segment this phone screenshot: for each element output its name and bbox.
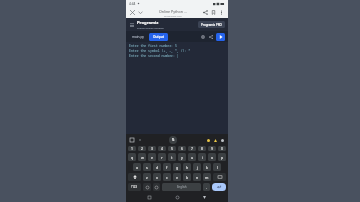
button[interactable]: z <box>143 173 151 181</box>
button[interactable]: Home <box>174 194 181 201</box>
button[interactable]: o <box>208 153 216 161</box>
staticText: 0 <box>221 146 223 151</box>
button[interactable]: Clipboard <box>129 137 135 143</box>
button[interactable]: p <box>218 153 226 161</box>
button[interactable]: h <box>183 163 191 171</box>
button[interactable]: Settings <box>199 33 206 40</box>
button[interactable]: Tab switcher <box>137 9 144 16</box>
button[interactable]: t <box>168 153 176 161</box>
staticText: English <box>177 185 187 189</box>
button[interactable]: w <box>138 153 146 161</box>
button[interactable]: g <box>173 163 181 171</box>
button[interactable]: u <box>188 153 196 161</box>
staticText: 9 <box>211 146 213 151</box>
button[interactable]: 7 <box>188 146 196 151</box>
button[interactable]: v <box>173 173 181 181</box>
button[interactable]: Shift <box>128 173 141 181</box>
staticText: Output <box>153 35 164 39</box>
button[interactable]: Emoji keyboard <box>143 183 151 191</box>
staticText: c <box>166 175 168 180</box>
button[interactable]: i <box>198 153 206 161</box>
button[interactable]: f <box>163 163 171 171</box>
staticText: u <box>191 155 194 160</box>
button[interactable]: 6 <box>178 146 186 151</box>
button[interactable]: Emoji <box>206 138 211 143</box>
staticText: Python Online Compiler <box>137 26 164 29</box>
staticText: m <box>205 175 209 180</box>
button[interactable]: main.py <box>129 33 147 41</box>
staticText: Online Python … <box>159 9 187 14</box>
button[interactable]: d <box>153 163 161 171</box>
staticText: ?123 <box>131 185 138 189</box>
button[interactable]: Settings <box>220 138 225 143</box>
button[interactable]: b <box>183 173 191 181</box>
staticText: i <box>202 155 203 160</box>
button[interactable]: Backspace <box>213 173 226 181</box>
button[interactable]: 3 <box>148 146 156 151</box>
button[interactable]: x <box>153 173 161 181</box>
staticText: 1 <box>131 146 133 151</box>
button[interactable]: c <box>163 173 171 181</box>
button[interactable]: Recent apps <box>146 194 153 201</box>
staticText: v <box>176 175 178 180</box>
button[interactable]: Bookmark <box>210 9 217 16</box>
button[interactable]: a <box>133 163 141 171</box>
button[interactable]: n <box>193 173 201 181</box>
button[interactable]: r <box>158 153 166 161</box>
staticText: k <box>206 165 208 170</box>
staticText: t <box>171 155 173 160</box>
button[interactable]: Programiz <box>137 20 164 29</box>
button[interactable]: Run <box>216 33 225 41</box>
staticText: b <box>186 175 189 180</box>
button[interactable]: Output <box>149 33 168 41</box>
staticText: 4:44 <box>129 2 136 6</box>
staticText: h <box>186 165 189 170</box>
staticText: 3 <box>151 146 153 151</box>
staticText: e <box>151 155 154 160</box>
button[interactable]: 5 <box>168 146 176 151</box>
button[interactable]: Back <box>201 194 208 201</box>
button[interactable]: 4 <box>158 146 166 151</box>
button[interactable]: . <box>203 183 210 191</box>
button[interactable]: j <box>193 163 201 171</box>
button[interactable]: 0 <box>218 146 226 151</box>
button[interactable]: y <box>178 153 186 161</box>
button[interactable]: q <box>128 153 136 161</box>
staticText: q <box>131 155 134 160</box>
staticText: 4 <box>161 146 163 151</box>
button[interactable]: 5 <box>169 136 177 144</box>
button[interactable]: Language <box>153 183 160 191</box>
button[interactable]: English <box>162 183 201 191</box>
staticText: j <box>197 165 198 170</box>
button[interactable]: k <box>203 163 211 171</box>
button[interactable]: Enter <box>212 183 226 191</box>
staticText: . <box>206 185 207 190</box>
button[interactable]: s <box>143 163 151 171</box>
staticText: 8 <box>201 146 203 151</box>
button[interactable]: Programiz PRO <box>198 21 225 28</box>
staticText: x <box>156 175 158 180</box>
button[interactable]: 9 <box>208 146 216 151</box>
button[interactable]: Online Python … <box>146 9 200 17</box>
button[interactable]: l <box>213 163 221 171</box>
button[interactable]: ?123 <box>128 183 141 191</box>
staticText: l <box>217 165 218 170</box>
staticText: z <box>146 175 148 180</box>
button[interactable]: 2 <box>138 146 146 151</box>
staticText: 5 <box>171 146 173 151</box>
button[interactable]: Warning <box>213 138 218 143</box>
button[interactable]: 8 <box>198 146 206 151</box>
button[interactable]: Close tab <box>129 9 136 16</box>
staticText: f <box>166 165 168 170</box>
button[interactable]: Share <box>207 33 214 40</box>
button[interactable]: m <box>203 173 211 181</box>
button[interactable]: Menu <box>129 22 135 28</box>
staticText: Enter the first number: 5 <box>129 44 177 48</box>
staticText: Programiz PRO <box>201 23 222 27</box>
button[interactable]: More options <box>218 9 225 16</box>
button[interactable]: e <box>148 153 156 161</box>
staticText: 6 <box>181 146 183 151</box>
staticText: programiz.com <box>164 14 182 17</box>
button[interactable]: 1 <box>128 146 136 151</box>
button[interactable]: Share <box>202 9 209 16</box>
